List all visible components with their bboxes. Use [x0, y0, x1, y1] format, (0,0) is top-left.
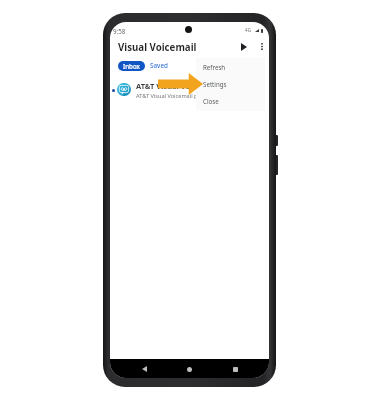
- staticText: Inbox: [123, 62, 140, 70]
- staticText: Settings: [203, 80, 227, 88]
- button[interactable]: Home: [183, 363, 195, 375]
- staticText: AT&T Visual Voicemail: [136, 81, 218, 91]
- button[interactable]: Saved: [145, 59, 173, 72]
- button[interactable]: Refresh: [196, 58, 265, 75]
- staticText: Close: [203, 97, 219, 105]
- button[interactable]: Back: [138, 363, 150, 375]
- staticText: Saved: [150, 61, 168, 70]
- staticText: 4G: [245, 27, 251, 33]
- staticText: AT&T Visual Voicemail provides: [136, 92, 217, 100]
- button[interactable]: Inbox: [118, 61, 145, 71]
- staticText: Visual Voicemail: [118, 41, 197, 54]
- staticText: 9:58: [113, 27, 126, 35]
- staticText: Refresh: [203, 63, 226, 71]
- button[interactable]: [110, 78, 269, 103]
- button[interactable]: Recents: [229, 363, 241, 375]
- button[interactable]: Close: [196, 92, 265, 109]
- button[interactable]: More options: [253, 38, 269, 55]
- button[interactable]: Settings: [196, 75, 265, 92]
- button[interactable]: Play all: [235, 38, 252, 55]
